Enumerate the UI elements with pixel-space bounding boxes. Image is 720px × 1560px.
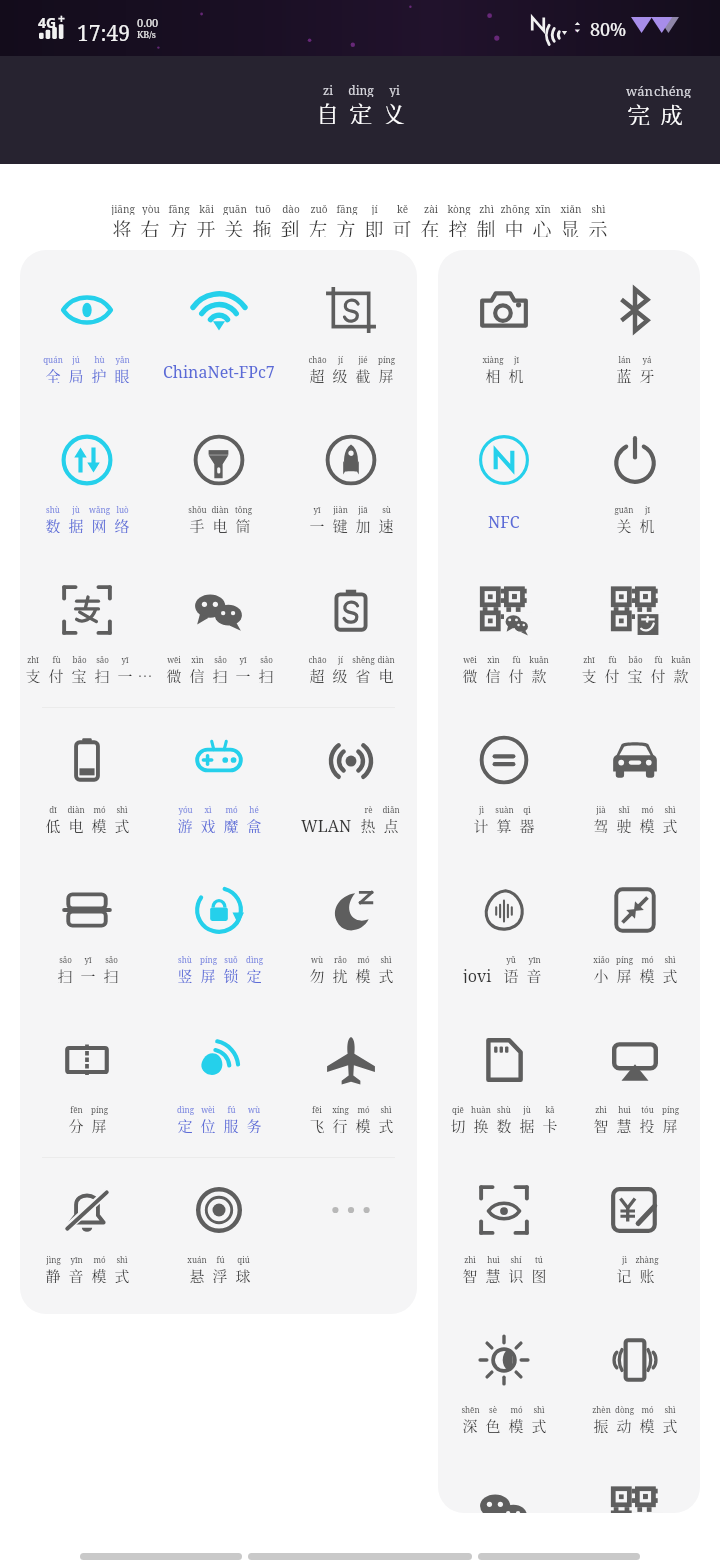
button[interactable]: WLAN	[285, 700, 417, 850]
button[interactable]: quán	[20, 250, 153, 400]
button[interactable]: wán	[612, 74, 698, 133]
staticText: 动	[616, 1415, 632, 1433]
button[interactable]: wēi	[438, 550, 569, 700]
staticText: xiàng	[482, 354, 504, 365]
staticText: 投	[639, 1115, 655, 1133]
button[interactable]: Recents	[478, 1553, 640, 1560]
button[interactable]: chāo	[285, 250, 417, 400]
staticText: tú	[535, 1254, 543, 1265]
staticText: 模	[639, 1415, 655, 1433]
button[interactable]: zhì	[569, 1000, 700, 1150]
staticText: 务	[246, 1115, 262, 1133]
staticText: shěng	[352, 654, 375, 665]
staticText: 式	[662, 1415, 678, 1433]
button[interactable]: zhī	[569, 550, 700, 700]
staticText: chāo	[308, 354, 327, 365]
button[interactable]: xiǎo	[569, 850, 700, 1000]
staticText: yīn	[70, 1254, 83, 1265]
staticText: 扫	[212, 665, 228, 683]
staticText: sǎo	[260, 654, 273, 665]
button[interactable]: qiē	[438, 1000, 569, 1150]
button[interactable]: jì	[569, 1150, 700, 1300]
staticText: píng	[616, 954, 633, 965]
button[interactable]: dī	[20, 700, 153, 850]
staticText: fù	[512, 654, 521, 665]
button[interactable]: guān	[569, 400, 700, 550]
staticText: 定	[177, 1115, 193, 1133]
staticText: wēi	[463, 654, 477, 665]
button[interactable]: shǒu	[153, 400, 285, 550]
button[interactable]: yóu	[153, 700, 285, 850]
button[interactable]: ChinaNet-FPc7	[153, 250, 285, 400]
staticText: 示	[588, 215, 608, 237]
button[interactable]: fēn	[20, 1000, 153, 1150]
staticText: 网	[91, 515, 107, 533]
staticText: 左	[308, 215, 328, 237]
staticText: mó	[641, 954, 654, 965]
button[interactable]: jovi	[438, 850, 569, 1000]
staticText: 超	[309, 665, 325, 683]
staticText: 语	[503, 965, 519, 983]
staticText: jí	[338, 354, 343, 365]
staticText: dī	[49, 804, 57, 815]
staticText: dìng	[177, 1104, 194, 1115]
staticText: wù	[248, 1104, 260, 1115]
staticText: sǎo	[96, 654, 109, 665]
staticText: 驾	[593, 815, 609, 833]
staticText: 式	[378, 965, 394, 983]
button[interactable]: zhī	[20, 550, 153, 700]
button[interactable]: lán	[569, 250, 700, 400]
button[interactable]: zhèn	[569, 1300, 700, 1450]
button[interactable]	[569, 1450, 700, 1513]
staticText: kuǎn	[529, 654, 549, 665]
staticText: xìn	[487, 654, 500, 665]
staticText: 付	[650, 665, 666, 683]
staticText: xiǎn	[560, 202, 582, 215]
staticText: mó	[357, 1104, 370, 1115]
staticText: guān	[223, 202, 247, 215]
staticText: 付	[508, 665, 524, 683]
button[interactable]: wù	[285, 850, 417, 1000]
button[interactable]	[438, 1450, 569, 1513]
staticText: 0.00	[137, 15, 159, 30]
staticText: 付	[48, 665, 64, 683]
staticText: yi	[389, 82, 400, 97]
staticText: jù	[72, 504, 80, 515]
button[interactable]: chāo	[285, 550, 417, 700]
button[interactable]: yī	[285, 400, 417, 550]
button[interactable]: fēi	[285, 1000, 417, 1150]
staticText: shì	[591, 202, 606, 215]
staticText: 热	[360, 815, 376, 833]
staticText: zhèn	[592, 1404, 611, 1415]
staticText: 牙	[639, 365, 655, 383]
button[interactable]	[285, 1150, 417, 1300]
staticText: 位	[200, 1115, 216, 1133]
button[interactable]: wēi	[153, 550, 285, 700]
button[interactable]: sǎo	[20, 850, 153, 1000]
staticText: mó	[93, 804, 106, 815]
button[interactable]: NFC	[438, 400, 569, 550]
button[interactable]: shù	[153, 850, 285, 1000]
staticText: diàn	[67, 804, 85, 815]
button[interactable]: dìng	[153, 1000, 285, 1150]
button[interactable]: xiàng	[438, 250, 569, 400]
staticText: jí	[371, 202, 378, 215]
staticText: 眼	[114, 365, 130, 383]
button[interactable]: Back	[80, 1553, 242, 1560]
button[interactable]: Home	[248, 1553, 472, 1560]
button[interactable]: jìng	[20, 1150, 153, 1300]
staticText: wǎng	[89, 504, 110, 515]
staticText: suàn	[495, 804, 514, 815]
staticText: jiàn	[333, 504, 348, 515]
staticText: 低	[45, 815, 61, 833]
staticText: 将	[112, 215, 132, 237]
button[interactable]: jià	[569, 700, 700, 850]
staticText: zhōng	[500, 202, 530, 215]
button[interactable]: shēn	[438, 1300, 569, 1450]
staticText: mó	[641, 1404, 654, 1415]
button[interactable]: jì	[438, 700, 569, 850]
staticText: fēn	[70, 1104, 83, 1115]
button[interactable]: shù	[20, 400, 153, 550]
button[interactable]: xuán	[153, 1150, 285, 1300]
button[interactable]: zhì	[438, 1150, 569, 1300]
